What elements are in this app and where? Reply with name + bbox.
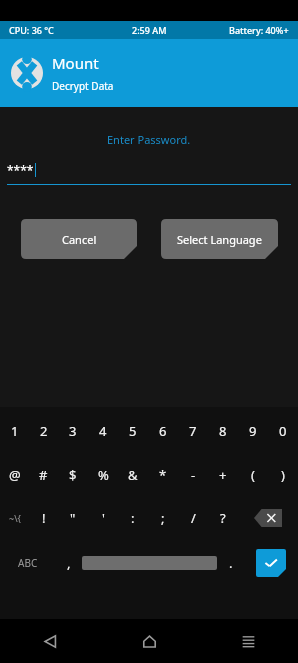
staticText: * xyxy=(159,466,167,484)
staticText: 7 xyxy=(189,422,197,440)
button[interactable]: 4 xyxy=(88,417,118,445)
button[interactable]: - xyxy=(178,461,208,489)
button[interactable]: ( xyxy=(238,461,268,489)
staticText: ~\{ xyxy=(9,512,21,524)
button[interactable]: Select Language xyxy=(161,219,278,259)
button[interactable]: 0 xyxy=(268,417,298,445)
staticText: 2 xyxy=(40,422,48,440)
button[interactable]: * xyxy=(148,461,178,489)
button[interactable]: $ xyxy=(58,461,88,489)
staticText: 0 xyxy=(279,422,287,440)
button[interactable]: . xyxy=(217,547,244,579)
staticText: $ xyxy=(69,466,77,484)
button[interactable]: @ xyxy=(0,461,29,489)
button[interactable]: # xyxy=(29,461,58,489)
staticText: 3 xyxy=(69,422,77,440)
button[interactable]: 5 xyxy=(118,417,148,445)
button[interactable]: 7 xyxy=(178,417,208,445)
staticText: CPU: 36 °C xyxy=(9,24,54,36)
button[interactable]: : xyxy=(118,503,148,533)
button[interactable]: 1 xyxy=(0,417,29,445)
button[interactable]: Recent apps xyxy=(199,619,298,663)
staticText: Mount xyxy=(52,53,99,73)
button[interactable]: 8 xyxy=(208,417,238,445)
button[interactable]: Backspace xyxy=(238,503,298,533)
staticText: % xyxy=(98,466,109,484)
staticText: 5 xyxy=(129,422,137,440)
staticText: ) xyxy=(281,466,285,484)
staticText: . xyxy=(229,554,233,572)
button[interactable]: , xyxy=(55,547,82,579)
staticText: 9 xyxy=(249,422,257,440)
staticText: - xyxy=(191,466,196,484)
staticText: ( xyxy=(251,466,255,484)
staticText: **** xyxy=(7,162,34,178)
button[interactable]: ? xyxy=(208,503,238,533)
staticText: 1 xyxy=(11,422,19,440)
staticText: & xyxy=(128,466,138,484)
button[interactable]: & xyxy=(118,461,148,489)
staticText: , xyxy=(67,554,71,572)
staticText: ? xyxy=(220,509,226,527)
staticText: + xyxy=(219,466,227,484)
button[interactable]: 9 xyxy=(238,417,268,445)
button[interactable]: Space xyxy=(82,547,217,579)
button[interactable]: / xyxy=(178,503,208,533)
staticText: Enter Password. xyxy=(107,132,191,147)
button[interactable]: Back xyxy=(0,619,100,663)
button[interactable]: 3 xyxy=(58,417,88,445)
staticText: 8 xyxy=(219,422,227,440)
button[interactable]: ABC xyxy=(0,547,55,579)
staticText: Battery: 40%+ xyxy=(229,24,289,36)
button[interactable]: ~\{ xyxy=(0,503,29,533)
staticText: 4 xyxy=(99,422,107,440)
button[interactable]: Enter xyxy=(244,547,298,579)
button[interactable]: ! xyxy=(29,503,58,533)
staticText: 2:59 AM xyxy=(132,24,167,36)
staticText: Cancel xyxy=(62,232,97,247)
button[interactable]: 2 xyxy=(29,417,58,445)
staticText: ABC xyxy=(18,556,38,570)
button[interactable]: ' xyxy=(88,503,118,533)
staticText: 6 xyxy=(159,422,167,440)
button[interactable]: % xyxy=(88,461,118,489)
button[interactable]: App icon xyxy=(0,39,298,107)
staticText: : xyxy=(131,509,135,527)
button[interactable]: **** xyxy=(7,162,291,185)
button[interactable]: ) xyxy=(268,461,298,489)
button[interactable]: Home xyxy=(100,619,199,663)
staticText: ' xyxy=(102,509,105,527)
button[interactable]: + xyxy=(208,461,238,489)
staticText: " xyxy=(70,509,76,527)
button[interactable]: 6 xyxy=(148,417,178,445)
staticText: / xyxy=(191,509,196,527)
staticText: Decrypt Data xyxy=(52,79,114,93)
other: App icon xyxy=(11,57,43,89)
staticText: Select Language xyxy=(177,232,262,247)
staticText: ! xyxy=(42,509,46,527)
staticText: # xyxy=(39,466,48,484)
staticText: @ xyxy=(9,466,21,484)
button[interactable]: ; xyxy=(148,503,178,533)
button[interactable]: Cancel xyxy=(21,219,137,259)
staticText: ; xyxy=(161,509,165,527)
button[interactable]: " xyxy=(58,503,88,533)
